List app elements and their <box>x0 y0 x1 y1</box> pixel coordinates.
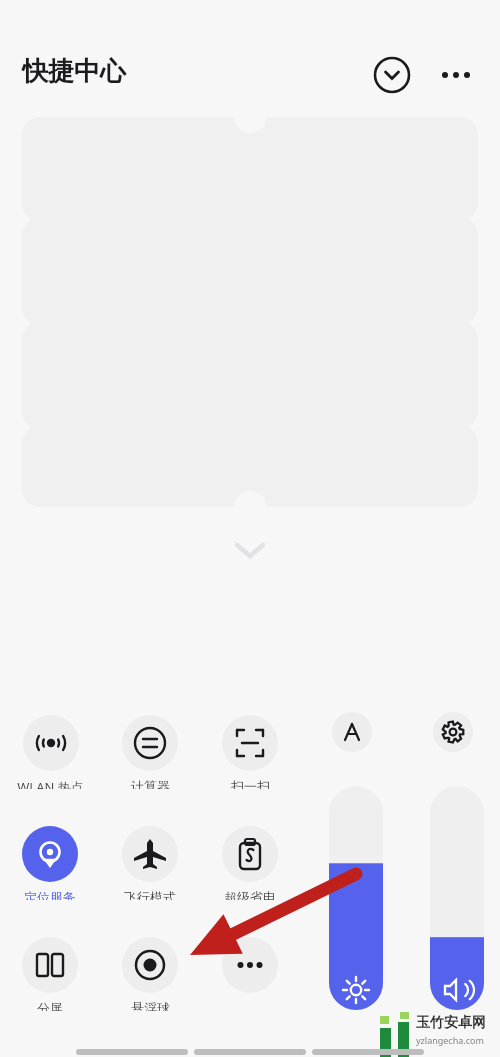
staticText: 定位服务 <box>24 889 76 900</box>
button[interactable]: 悬浮球 <box>100 937 200 1011</box>
staticText: 飞行模式 <box>124 889 176 900</box>
staticText: 分屏 <box>37 1000 63 1011</box>
staticText: 玉竹安卓网 <box>416 1014 486 1032</box>
button[interactable]: Slider <box>430 786 484 1010</box>
button[interactable]: Expand notifications <box>220 530 280 570</box>
button[interactable]: More options <box>437 56 475 94</box>
button[interactable]: Nav 0 <box>76 1049 188 1055</box>
button[interactable]: Nav 1 <box>194 1049 306 1055</box>
button[interactable]: Slider <box>329 786 383 1010</box>
button[interactable]: Auto brightness <box>332 712 372 752</box>
button[interactable]: 超级省电 <box>200 826 300 900</box>
button[interactable]: Collapse <box>373 56 411 94</box>
button[interactable]: Nav 2 <box>312 1049 424 1055</box>
button[interactable]: 定位服务 <box>0 826 100 900</box>
button[interactable]: 扫一扫 <box>200 715 300 789</box>
staticText: WLAN 热点 <box>17 778 84 789</box>
staticText: yzlangecha.com <box>416 1034 484 1046</box>
staticText: 扫一扫 <box>231 778 270 789</box>
staticText: 计算器 <box>131 778 170 789</box>
button[interactable]: WLAN 热点 <box>0 715 100 789</box>
staticText: 快捷中心 <box>22 55 126 88</box>
staticText: 悬浮球 <box>131 1000 170 1011</box>
button[interactable]: 分屏 <box>0 937 100 1011</box>
button[interactable]: More tiles <box>200 937 300 1011</box>
button[interactable]: Sound settings <box>433 712 473 752</box>
staticText: 超级省电 <box>224 889 276 900</box>
button[interactable]: 飞行模式 <box>100 826 200 900</box>
button[interactable]: 计算器 <box>100 715 200 789</box>
